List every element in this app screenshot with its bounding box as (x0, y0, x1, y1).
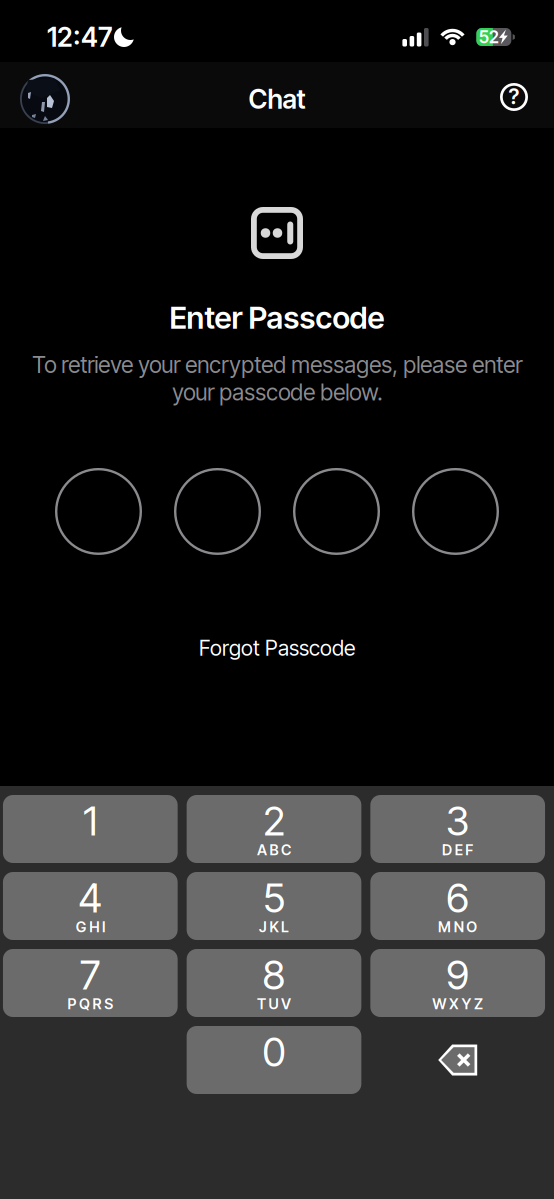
staticText: To retrieve your encrypted messages, ple… (32, 351, 522, 406)
button[interactable]: Help (500, 69, 554, 121)
staticText: 9 (446, 951, 469, 999)
staticText: 3 (446, 797, 470, 845)
button[interactable]: 3 (370, 795, 545, 863)
staticText: GHI (76, 918, 105, 936)
staticText: 2 (263, 797, 285, 845)
button[interactable]: Delete (370, 1026, 545, 1094)
staticText: 5 (263, 874, 285, 922)
staticText: 4 (78, 874, 102, 922)
staticText: Enter Passcode (169, 299, 384, 336)
staticText: ? (508, 84, 519, 109)
button[interactable]: 0 (187, 1026, 361, 1094)
staticText: PQRS (67, 995, 113, 1013)
staticText: Forgot Passcode (199, 635, 355, 661)
button[interactable]: Profile (0, 64, 70, 126)
staticText: Chat (248, 83, 305, 115)
staticText: MNO (438, 918, 477, 936)
staticText: 12:47 (47, 21, 112, 53)
staticText: 6 (446, 874, 469, 922)
button[interactable]: Forgot Passcode (185, 627, 369, 669)
staticText: TUV (257, 995, 291, 1013)
staticText: 1 (83, 797, 97, 845)
staticText: WXYZ (432, 995, 483, 1013)
button[interactable]: 6 (370, 872, 545, 940)
staticText: 0 (262, 1028, 285, 1076)
staticText: JKL (259, 918, 289, 936)
button[interactable]: 4 (3, 872, 178, 940)
button[interactable]: 7 (3, 949, 178, 1017)
staticText: 7 (80, 951, 101, 999)
button[interactable]: 2 (187, 795, 361, 863)
staticText: DEF (442, 841, 473, 859)
button[interactable]: 5 (187, 872, 361, 940)
staticText: 8 (262, 951, 285, 999)
staticText: 52 (479, 26, 499, 47)
button[interactable]: 8 (187, 949, 361, 1017)
staticText: ABC (257, 841, 291, 859)
button[interactable]: 9 (370, 949, 545, 1017)
button[interactable]: 1 (3, 795, 178, 863)
